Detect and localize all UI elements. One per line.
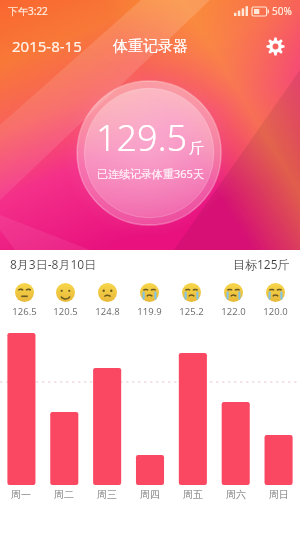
staticText: 周五: [183, 488, 203, 501]
staticText: 8月3日-8月10日: [10, 256, 97, 272]
staticText: 周六: [226, 488, 246, 501]
staticText: 下午3:22: [8, 4, 48, 18]
staticText: 斤: [189, 139, 204, 158]
staticText: 124.8: [95, 305, 120, 318]
staticText: 2015-8-15: [12, 36, 82, 56]
staticText: 目标125斤: [233, 256, 290, 272]
button[interactable]: 126.5: [4, 283, 45, 318]
staticText: 已连续记录体重365天: [97, 166, 204, 181]
staticText: 126.5: [12, 305, 37, 318]
button[interactable]: 124.8: [86, 283, 128, 318]
button[interactable]: Settings: [258, 29, 292, 63]
button[interactable]: 122.0: [212, 283, 254, 318]
button[interactable]: 120.5: [45, 283, 86, 318]
staticText: 125.2: [179, 305, 204, 318]
staticText: 周二: [54, 488, 74, 501]
staticText: 119.9: [137, 305, 162, 318]
staticText: 周日: [269, 488, 289, 501]
staticText: 122.0: [221, 305, 246, 318]
staticText: 50%: [272, 4, 292, 18]
button[interactable]: 120.0: [254, 283, 296, 318]
staticText: 周一: [11, 488, 31, 501]
staticText: 体重记录器: [113, 37, 188, 56]
button[interactable]: 119.9: [128, 283, 170, 318]
staticText: 周四: [140, 488, 160, 501]
staticText: 周三: [97, 488, 117, 501]
staticText: 129.5: [96, 113, 188, 162]
button[interactable]: 129.5: [70, 113, 230, 181]
staticText: 120.0: [263, 305, 288, 318]
staticText: 120.5: [53, 305, 78, 318]
button[interactable]: 125.2: [170, 283, 212, 318]
